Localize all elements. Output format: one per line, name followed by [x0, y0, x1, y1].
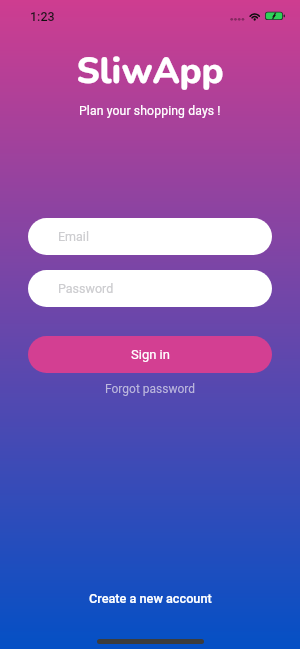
button[interactable]: Create a new account — [69, 583, 232, 614]
other: SliwApp — [0, 0, 300, 100]
button[interactable]: Forgot password — [95, 378, 206, 400]
button[interactable]: Email — [28, 218, 272, 255]
staticText: Email — [58, 229, 89, 244]
button[interactable]: Sign in — [28, 336, 272, 373]
staticText: Plan your shopping days ! — [79, 104, 221, 118]
button[interactable]: Password — [28, 270, 272, 307]
staticText: Forgot password — [105, 382, 196, 396]
staticText: 1:23 — [30, 9, 55, 24]
staticText: Password — [58, 281, 114, 296]
staticText: Create a new account — [89, 591, 212, 606]
staticText: Sign in — [131, 347, 170, 362]
